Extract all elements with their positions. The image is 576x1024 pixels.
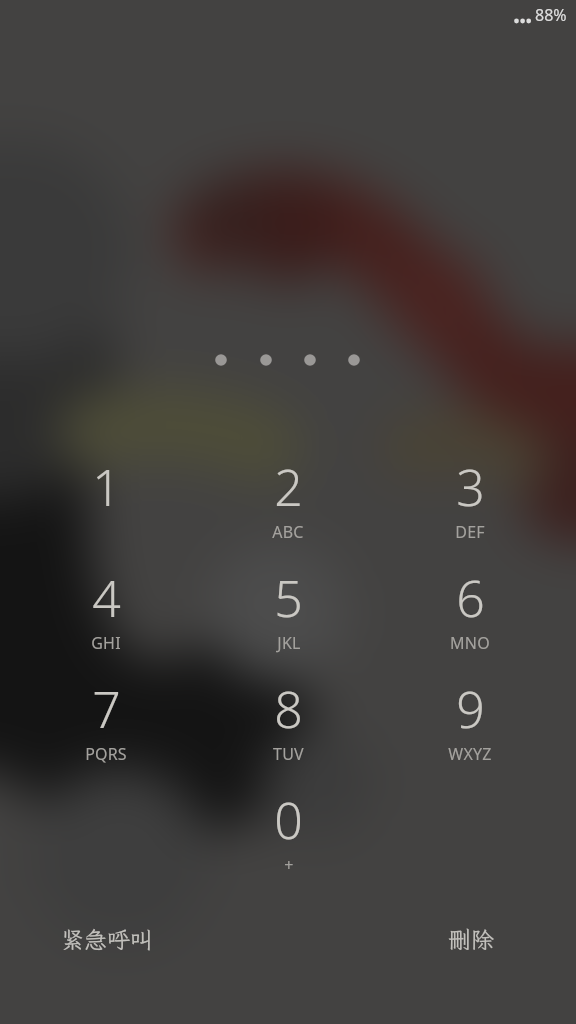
- staticText: 88%: [535, 4, 567, 26]
- staticText: MNO: [450, 632, 490, 654]
- button[interactable]: 4: [51, 564, 161, 664]
- staticText: TUV: [273, 743, 304, 765]
- staticText: 4: [92, 564, 121, 632]
- staticText: DEF: [455, 521, 485, 543]
- staticText: 紧急呼叫: [61, 924, 153, 954]
- button[interactable]: 3: [415, 453, 525, 553]
- button[interactable]: 5: [233, 564, 343, 664]
- button[interactable]: 6: [415, 564, 525, 664]
- button[interactable]: 0: [233, 786, 343, 886]
- staticText: 0: [274, 786, 303, 854]
- staticText: 3: [456, 453, 485, 521]
- button[interactable]: 9: [415, 675, 525, 775]
- staticText: 1: [92, 453, 121, 521]
- staticText: 7: [92, 675, 121, 743]
- staticText: 9: [456, 675, 485, 743]
- button[interactable]: 紧急呼叫: [55, 918, 159, 960]
- staticText: WXYZ: [448, 743, 492, 765]
- button[interactable]: 2: [233, 453, 343, 553]
- staticText: ABC: [272, 521, 304, 543]
- staticText: 6: [456, 564, 485, 632]
- staticText: 5: [274, 564, 303, 632]
- staticText: PQRS: [85, 743, 127, 765]
- button[interactable]: 8: [233, 675, 343, 775]
- button[interactable]: 1: [51, 453, 161, 553]
- staticText: JKL: [277, 632, 301, 654]
- button[interactable]: 7: [51, 675, 161, 775]
- staticText: 8: [274, 675, 303, 743]
- staticText: 2: [274, 453, 303, 521]
- staticText: GHI: [91, 632, 121, 654]
- staticText: +: [284, 854, 294, 876]
- staticText: 删除: [448, 924, 494, 954]
- button[interactable]: 删除: [442, 918, 500, 960]
